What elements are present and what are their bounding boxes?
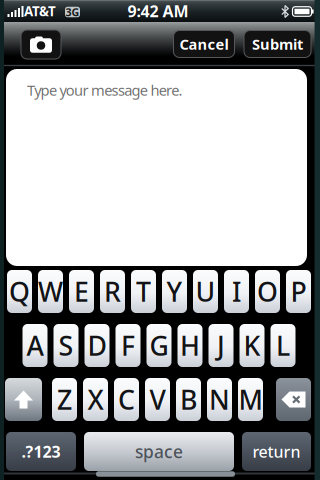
staticText: H (180, 328, 200, 363)
staticText: A (26, 328, 43, 363)
button[interactable]: J (208, 324, 233, 367)
staticText: space (135, 440, 183, 463)
staticText: G (149, 328, 168, 363)
staticText: V (149, 382, 165, 417)
staticText: T (136, 274, 151, 309)
button[interactable]: X (83, 378, 108, 421)
button[interactable]: R (100, 270, 125, 313)
button[interactable]: E (69, 270, 94, 313)
button[interactable]: U (193, 270, 218, 313)
staticText: return (252, 441, 300, 462)
button[interactable]: C (114, 378, 139, 421)
staticText: C (118, 382, 135, 417)
button[interactable]: Camera (21, 30, 61, 59)
staticText: E (74, 274, 89, 309)
button[interactable]: Y (162, 270, 187, 313)
button[interactable]: B (176, 378, 201, 421)
staticText: 9:42 AM (127, 0, 188, 22)
button[interactable]: A (22, 324, 47, 367)
staticText: U (195, 274, 215, 309)
staticText: I (232, 274, 241, 309)
staticText: Z (57, 382, 72, 417)
staticText: Submit (252, 34, 303, 54)
staticText: K (243, 328, 260, 363)
button[interactable]: Z (52, 378, 77, 421)
button[interactable]: L (270, 324, 295, 367)
button[interactable]: M (238, 378, 263, 421)
staticText: L (276, 328, 290, 363)
button[interactable]: O (255, 270, 280, 313)
button[interactable]: P (286, 270, 311, 313)
button[interactable]: H (177, 324, 202, 367)
button[interactable]: T (131, 270, 156, 313)
staticText: Type your message here. (27, 80, 183, 100)
button[interactable]: W (38, 270, 63, 313)
staticText: B (180, 382, 197, 417)
button[interactable]: F (115, 324, 140, 367)
button[interactable]: N (207, 378, 232, 421)
button[interactable]: Submit (244, 30, 311, 57)
staticText: N (209, 382, 230, 417)
button[interactable]: D (84, 324, 109, 367)
button[interactable]: Q (7, 270, 32, 313)
button[interactable]: G (146, 324, 171, 367)
button[interactable]: Shift (5, 378, 42, 421)
staticText: Cancel (179, 34, 228, 54)
staticText: .?123 (21, 441, 60, 462)
staticText: S (58, 328, 73, 363)
button[interactable]: return (242, 432, 311, 471)
staticText: Q (9, 274, 30, 309)
staticText: F (121, 328, 135, 363)
staticText: J (217, 328, 225, 363)
button[interactable]: V (145, 378, 170, 421)
staticText: AT&T (24, 2, 56, 20)
staticText: X (87, 382, 103, 417)
button[interactable]: .?123 (6, 432, 76, 471)
staticText: 3G (65, 5, 79, 19)
staticText: R (104, 274, 121, 309)
button[interactable]: S (53, 324, 78, 367)
staticText: W (38, 274, 63, 309)
button[interactable]: K (239, 324, 264, 367)
staticText: O (257, 274, 278, 309)
button[interactable]: I (224, 270, 249, 313)
staticText: D (87, 328, 106, 363)
button[interactable]: Delete (276, 378, 311, 421)
button[interactable]: space (84, 432, 234, 471)
staticText: Y (166, 274, 182, 309)
button[interactable]: Cancel (173, 30, 234, 57)
staticText: M (238, 382, 262, 417)
staticText: P (290, 274, 306, 309)
